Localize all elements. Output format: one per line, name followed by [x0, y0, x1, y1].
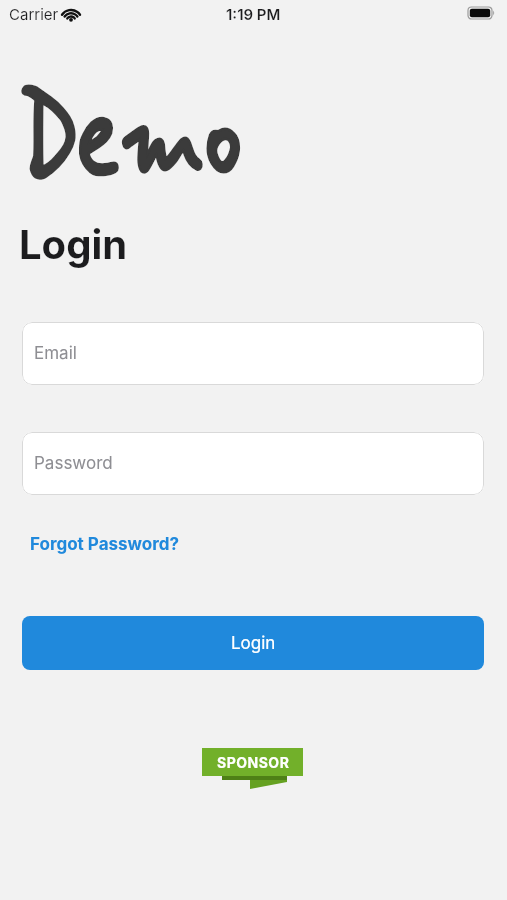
staticText: Login [231, 633, 276, 654]
staticText: Demo [18, 66, 242, 217]
staticText: Demo [18, 66, 242, 217]
button[interactable]: SPONSOR [195, 740, 315, 795]
staticText: Password [34, 453, 113, 474]
staticText: 1:19 PM [226, 5, 281, 23]
button[interactable]: Forgot Password? [30, 534, 179, 555]
staticText: SPONSOR [217, 754, 290, 771]
staticText: Login [19, 220, 128, 268]
staticText: Email [34, 343, 77, 364]
staticText: Carrier [9, 5, 59, 23]
button[interactable]: Password [22, 432, 484, 495]
button[interactable]: Login [22, 616, 484, 670]
button[interactable]: Email [22, 322, 484, 385]
